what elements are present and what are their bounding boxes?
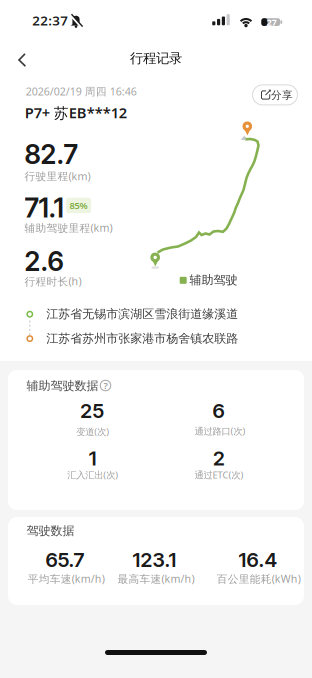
staticText: 平均车速(km/h) — [28, 572, 105, 586]
staticText: 85% — [70, 199, 88, 212]
staticText: 辅助驾驶里程(km) — [24, 221, 112, 235]
staticText: 最高车速(km/h) — [117, 572, 194, 586]
staticText: 汇入汇出(次) — [67, 469, 118, 481]
staticText: ? — [103, 379, 107, 392]
staticText: 江苏省无锡市滨湖区雪浪街道缘溪道 — [46, 307, 238, 321]
staticText: 驾驶数据 — [26, 523, 74, 538]
staticText: 通过ETC(次) — [194, 469, 243, 481]
staticText: 123.1 — [133, 548, 177, 572]
staticText: 通过路口(次) — [194, 425, 245, 437]
button[interactable]: 分享 — [252, 85, 297, 105]
staticText: 变道(次) — [76, 425, 109, 438]
button[interactable]: Back — [7, 45, 37, 75]
staticText: 71.1 — [24, 192, 63, 224]
staticText: P7+ 苏EB***12 — [25, 103, 127, 122]
staticText: 6 — [212, 398, 224, 423]
staticText: 行程时长(h) — [24, 274, 81, 288]
staticText: 辅助驾驶 — [189, 273, 237, 287]
button[interactable]: 辅助驾驶数据说明 — [98, 378, 112, 392]
staticText: 2.6 — [24, 245, 63, 277]
staticText: 江苏省苏州市张家港市杨舍镇农联路 — [46, 331, 238, 346]
staticText: 分享 — [271, 88, 293, 102]
staticText: 25 — [80, 399, 104, 423]
staticText: 65.7 — [45, 548, 84, 572]
staticText: 辅助驾驶数据 — [26, 378, 98, 393]
staticText: 2 — [213, 446, 225, 470]
staticText: 行驶里程(km) — [24, 169, 90, 183]
staticText: 百公里能耗(kWh) — [217, 572, 301, 586]
staticText: 27 — [266, 16, 276, 28]
staticText: 行程记录 — [130, 50, 182, 66]
staticText: 1 — [89, 446, 97, 470]
staticText: 16.4 — [238, 548, 277, 572]
staticText: 82.7 — [24, 138, 77, 171]
staticText: 2026/02/19 周四 16:46 — [26, 84, 137, 98]
staticText: 22:37 — [32, 11, 68, 29]
